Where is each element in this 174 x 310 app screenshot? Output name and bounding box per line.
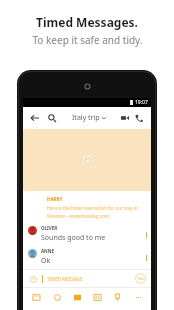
staticText: Florence – www.booking.com	[47, 213, 109, 219]
staticText: HARRY	[47, 196, 63, 202]
button[interactable]: More	[131, 290, 145, 304]
button[interactable]: Emoji	[28, 274, 38, 284]
staticText: ANNE	[41, 248, 54, 254]
button[interactable]: Back	[28, 111, 42, 125]
button[interactable]: Audio	[110, 290, 124, 304]
button[interactable]: ANNE	[23, 246, 151, 269]
button[interactable]: Keyboard	[29, 290, 43, 304]
button[interactable]: Send timed message	[135, 273, 146, 284]
staticText: TIMED MESSAGE	[47, 276, 83, 282]
staticText: OLIVER	[41, 225, 58, 231]
button[interactable]: Video call	[118, 111, 132, 125]
staticText: 19:07	[135, 99, 148, 106]
staticText: Here is the hotel reservation for our st…	[47, 205, 138, 211]
staticText: To keep it safe and tidy.	[32, 33, 143, 47]
staticText: Timed Messages.	[36, 14, 138, 30]
button[interactable]: Call	[132, 111, 146, 125]
button[interactable]: Camera	[50, 290, 64, 304]
staticText: 10s	[137, 276, 144, 281]
button[interactable]: OLIVER	[23, 223, 151, 246]
button[interactable]: Search	[45, 111, 59, 125]
staticText: Sounds good to me	[41, 233, 106, 243]
staticText: Ok	[41, 256, 51, 266]
button[interactable]: GIF	[90, 290, 104, 304]
staticText: Italy trip	[72, 113, 100, 123]
button[interactable]: Gallery	[70, 290, 84, 304]
